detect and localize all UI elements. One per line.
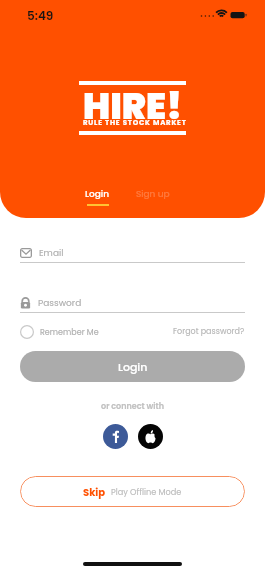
staticText: Skip xyxy=(83,485,106,499)
button[interactable]: Login xyxy=(77,188,118,206)
staticText: Sign up xyxy=(136,188,170,201)
staticText: Email xyxy=(39,247,64,260)
button[interactable]: Login xyxy=(20,351,245,382)
button[interactable]: Skip xyxy=(20,476,245,507)
staticText: Login xyxy=(118,359,148,374)
staticText: RULE THE STOCK MARKET xyxy=(83,118,187,128)
staticText: Login xyxy=(85,188,110,201)
button[interactable]: Forgot password? xyxy=(173,326,245,337)
button[interactable]: Sign up xyxy=(128,188,178,201)
button[interactable]: Sign in with Apple xyxy=(138,424,163,449)
button[interactable]: Sign in with Facebook xyxy=(103,424,128,449)
staticText: Password xyxy=(38,297,82,310)
staticText: Remember Me xyxy=(40,327,99,338)
staticText: Play Offline Mode xyxy=(111,486,182,497)
staticText: or connect with xyxy=(20,401,245,412)
button[interactable]: Remember Me xyxy=(20,325,99,339)
staticText: 5:49 xyxy=(27,7,54,24)
staticText: HIRE! xyxy=(83,81,183,131)
